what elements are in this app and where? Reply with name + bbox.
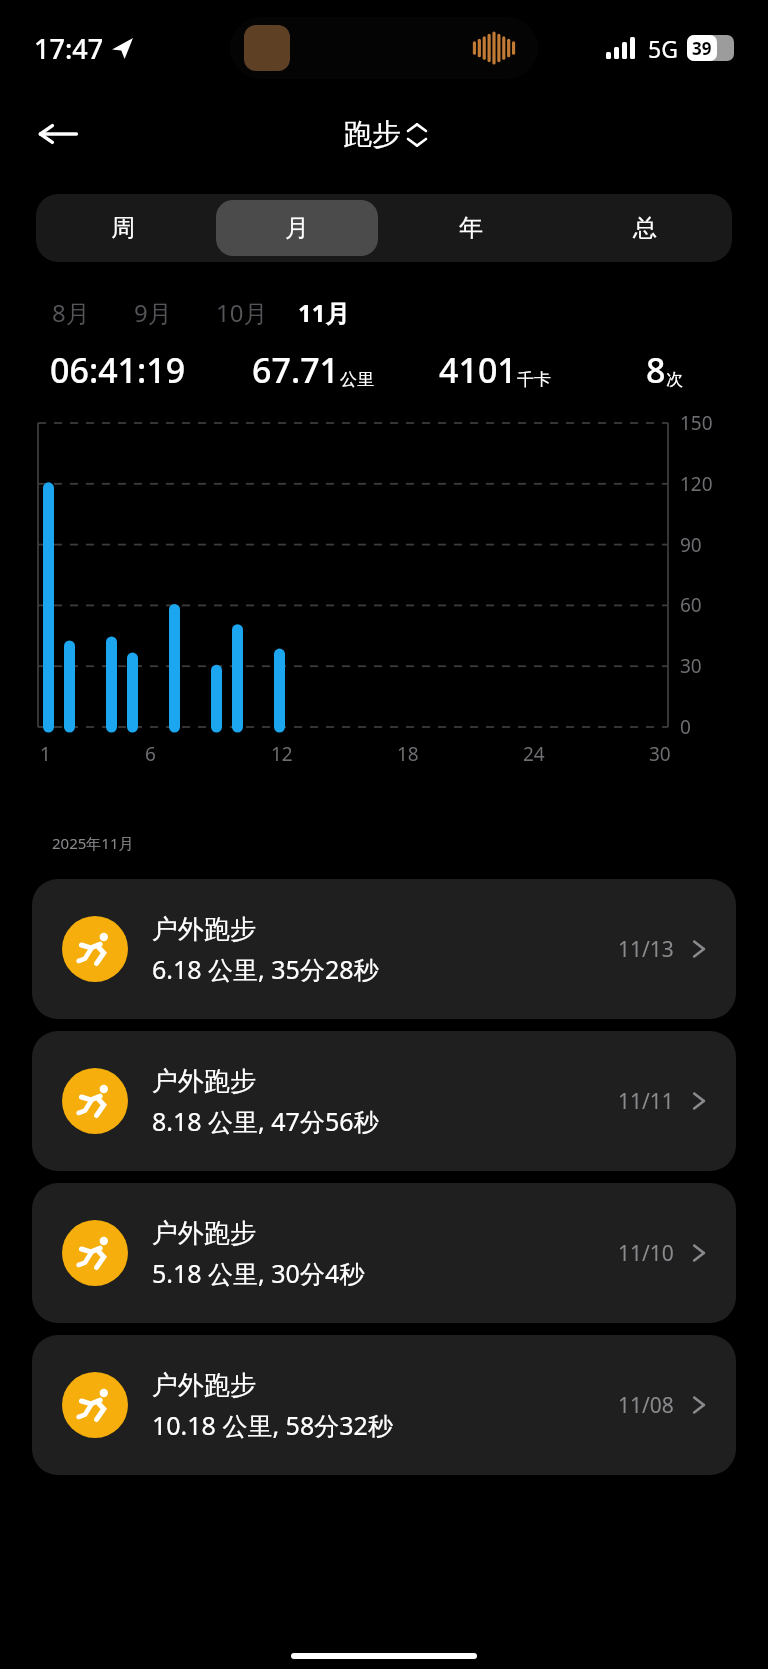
staticText: 2025年11月 xyxy=(52,833,134,853)
staticText: 公里 xyxy=(340,369,374,390)
button[interactable]: 年 xyxy=(390,200,552,256)
button[interactable]: 11月 xyxy=(298,296,380,329)
staticText: 周 xyxy=(111,213,135,243)
button[interactable]: 月 xyxy=(216,200,378,256)
button[interactable]: 总 xyxy=(564,200,726,256)
staticText: 9月 xyxy=(134,296,172,329)
staticText: 户外跑步 xyxy=(152,913,256,946)
staticText: 30 xyxy=(680,653,702,679)
staticText: 6 xyxy=(145,741,156,767)
staticText: 月 xyxy=(285,213,309,243)
staticText: 8月 xyxy=(52,296,90,329)
staticText: 6.18 公里, 35分28秒 xyxy=(152,952,379,986)
staticText: 跑步 xyxy=(343,116,401,153)
staticText: 户外跑步 xyxy=(152,1065,256,1098)
button[interactable]: Back xyxy=(26,102,90,166)
button[interactable]: 户外跑步 xyxy=(32,1183,736,1323)
staticText: 150 xyxy=(680,410,713,436)
staticText: 10.18 公里, 58分32秒 xyxy=(152,1408,393,1442)
staticText: 10月 xyxy=(216,296,268,329)
staticText: 90 xyxy=(680,532,702,558)
staticText: 8 xyxy=(646,347,666,393)
staticText: 11/08 xyxy=(618,1391,674,1420)
button[interactable]: 10月 xyxy=(216,296,298,329)
staticText: 千卡 xyxy=(517,369,551,390)
staticText: 17:47 xyxy=(34,30,104,67)
staticText: 120 xyxy=(680,471,713,497)
button[interactable]: 9月 xyxy=(134,296,216,329)
staticText: 总 xyxy=(633,213,657,243)
staticText: 11/10 xyxy=(618,1239,674,1268)
staticText: 18 xyxy=(397,741,419,767)
staticText: 5.18 公里, 30分4秒 xyxy=(152,1256,365,1290)
staticText: 30 xyxy=(649,741,671,767)
staticText: 67.71 xyxy=(252,347,340,393)
staticText: 60 xyxy=(680,592,702,618)
staticText: 11月 xyxy=(298,296,350,329)
staticText: 11/13 xyxy=(618,935,674,964)
button[interactable]: 8月 xyxy=(52,296,134,329)
staticText: 39 xyxy=(692,37,712,60)
staticText: 4101 xyxy=(439,347,517,393)
staticText: 5G xyxy=(648,33,678,64)
button[interactable]: 户外跑步 xyxy=(32,1335,736,1475)
button[interactable]: 跑步 xyxy=(335,110,434,159)
staticText: 户外跑步 xyxy=(152,1217,256,1250)
staticText: 12 xyxy=(271,741,293,767)
staticText: 次 xyxy=(666,369,683,390)
staticText: 0 xyxy=(680,714,691,740)
button[interactable]: 周 xyxy=(42,200,204,256)
button[interactable]: 户外跑步 xyxy=(32,1031,736,1171)
button[interactable]: 户外跑步 xyxy=(32,879,736,1019)
staticText: 年 xyxy=(459,213,483,243)
staticText: 11/11 xyxy=(618,1087,674,1116)
staticText: 户外跑步 xyxy=(152,1369,256,1402)
staticText: 1 xyxy=(40,741,51,767)
staticText: 06:41:19 xyxy=(50,347,186,393)
staticText: 24 xyxy=(523,741,545,767)
staticText: 8.18 公里, 47分56秒 xyxy=(152,1104,379,1138)
